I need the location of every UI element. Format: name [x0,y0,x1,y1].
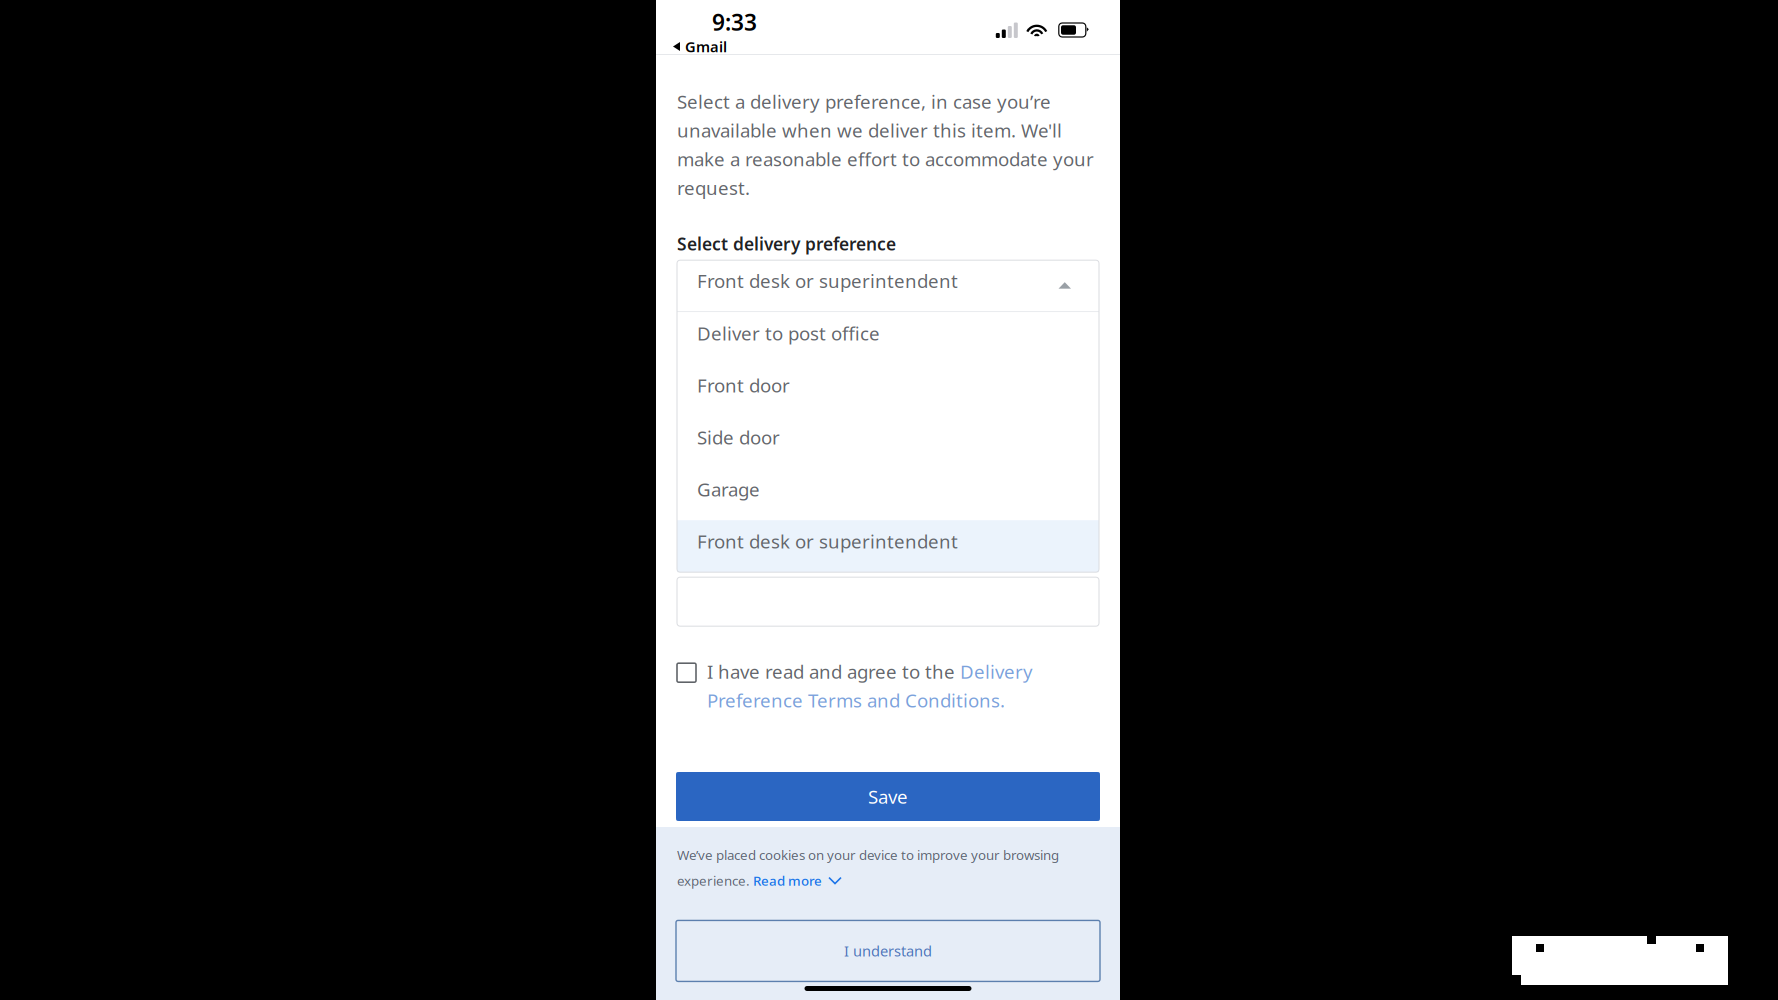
staticText: Delivery [960,659,1033,684]
staticText: Select delivery preference [677,232,896,255]
staticText: Front desk or superintendent [697,529,958,554]
staticText: Select a delivery preference, in case yo… [677,89,1094,200]
button[interactable]: Garage [677,468,1099,520]
button[interactable]: Delivery [960,659,1033,684]
staticText: Garage [697,477,760,502]
button[interactable]: Gmail [656,38,1120,55]
staticText: Gmail [685,37,727,56]
button[interactable]: Front desk or superintendent [677,260,1099,311]
button[interactable]: Side door [677,416,1099,468]
staticText: We’ve placed cookies on your device to i… [677,846,1059,864]
staticText: Save [868,784,908,809]
staticText: Read more [753,872,822,889]
staticText: experience. [677,872,750,889]
staticText: Preference Terms and Conditions. [707,688,1005,713]
staticText: Front door [697,373,790,398]
button[interactable]: Front desk or superintendent [677,520,1099,572]
button[interactable]: Front door [677,364,1099,416]
button[interactable]: I understand [676,920,1100,981]
button[interactable]: Preference Terms and Conditions. [707,688,1099,713]
button[interactable]: Agree to Delivery Preference Terms and C… [677,659,696,682]
staticText: Deliver to post office [697,321,880,346]
staticText: I have read and agree to the [707,659,960,684]
staticText: Front desk or superintendent [697,268,958,293]
staticText: Side door [697,425,780,450]
button[interactable]: Save [676,772,1100,821]
staticText: 9:33 [712,7,757,37]
button[interactable]: Read more [753,872,842,889]
button[interactable]: Deliver to post office [677,312,1099,364]
staticText: I understand [844,941,932,961]
